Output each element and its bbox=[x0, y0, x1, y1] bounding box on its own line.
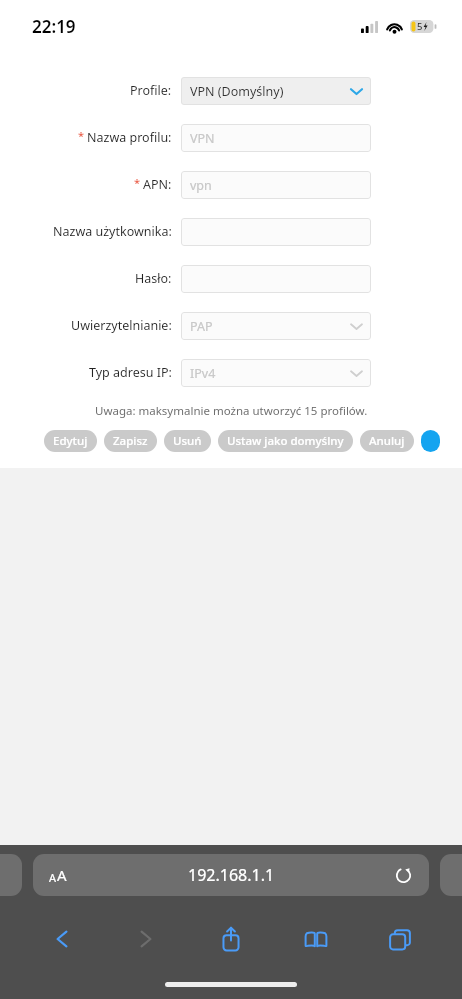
other: Reload bbox=[395, 867, 412, 884]
staticText: Ustaw jako domyślny bbox=[227, 433, 344, 449]
button[interactable]: Next tab bbox=[440, 854, 462, 896]
staticText: Nazwa profilu: bbox=[87, 129, 172, 146]
button[interactable]: Previous tab bbox=[0, 854, 22, 896]
staticText: Nowy bbox=[430, 430, 431, 452]
staticText: APN: bbox=[143, 176, 172, 193]
other: Open dropdown bbox=[351, 88, 362, 95]
staticText: * bbox=[134, 175, 141, 190]
other: Open dropdown bbox=[351, 323, 362, 330]
button[interactable]: Back bbox=[39, 917, 85, 961]
button[interactable]: VPN bbox=[181, 124, 371, 152]
staticText: Anuluj bbox=[369, 433, 405, 449]
button[interactable]: vpn bbox=[181, 171, 371, 199]
other: Open dropdown bbox=[351, 370, 362, 377]
button[interactable]: Anuluj bbox=[360, 430, 414, 452]
button[interactable]: Zapisz bbox=[104, 430, 157, 452]
button[interactable]: Share bbox=[208, 917, 254, 961]
button[interactable] bbox=[181, 218, 371, 246]
other: Battery bbox=[410, 20, 436, 33]
staticText: IPv4 bbox=[190, 365, 216, 382]
button[interactable]: Ustaw jako domyślny bbox=[218, 430, 353, 452]
button[interactable]: Bookmarks bbox=[293, 917, 339, 961]
staticText: Nazwa użytkownika: bbox=[53, 223, 172, 240]
button[interactable]: Tabs bbox=[377, 917, 423, 961]
button[interactable]: Forward bbox=[123, 917, 169, 961]
button[interactable]: Usuń bbox=[164, 430, 211, 452]
other: Wi-Fi bbox=[386, 20, 403, 33]
staticText: Profile: bbox=[130, 82, 172, 99]
button[interactable]: Nowy bbox=[421, 430, 440, 452]
staticText: vpn bbox=[190, 177, 212, 194]
staticText: Usuń bbox=[173, 433, 202, 449]
staticText: Hasło: bbox=[135, 270, 172, 287]
staticText: Typ adresu IP: bbox=[89, 364, 172, 381]
staticText: Zapisz bbox=[113, 433, 148, 449]
staticText: A bbox=[57, 865, 67, 885]
other: Signal bbox=[361, 21, 379, 33]
staticText: VPN bbox=[190, 130, 215, 147]
staticText: PAP bbox=[190, 318, 213, 335]
staticText: A bbox=[49, 870, 57, 885]
button[interactable]: VPN (Domyślny) bbox=[181, 77, 371, 105]
button[interactable] bbox=[181, 265, 371, 293]
button[interactable]: PAP bbox=[181, 312, 371, 340]
staticText: Edytuj bbox=[53, 433, 88, 449]
button[interactable]: A bbox=[33, 854, 429, 896]
staticText: 192.168.1.1 bbox=[188, 864, 275, 886]
button[interactable]: IPv4 bbox=[181, 359, 371, 387]
staticText: 5 bbox=[417, 20, 423, 33]
staticText: Uwierzytelnianie: bbox=[71, 317, 172, 334]
staticText: * bbox=[78, 128, 85, 143]
staticText: 22:19 bbox=[32, 15, 76, 38]
staticText: VPN (Domyślny) bbox=[190, 83, 284, 100]
button[interactable]: Edytuj bbox=[44, 430, 97, 452]
staticText: Uwaga: maksymalnie można utworzyć 15 pro… bbox=[95, 403, 368, 419]
